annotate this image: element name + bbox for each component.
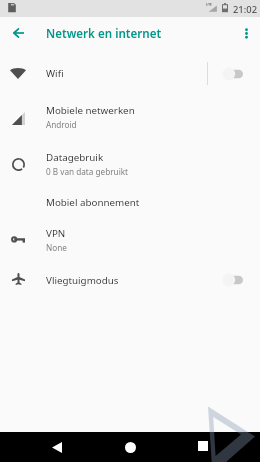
button[interactable]: Wifi [0, 55, 260, 92]
button[interactable]: Recents [188, 431, 218, 461]
button[interactable]: Mobiele netwerken [0, 94, 260, 139]
button[interactable]: Toggle Wifi [208, 55, 260, 92]
staticText: Vliegtuigmodus [46, 274, 119, 287]
button[interactable]: More options [232, 19, 260, 47]
button[interactable]: Mobiel abonnement [0, 185, 260, 219]
staticText: Mobiele netwerken [46, 104, 135, 117]
button[interactable]: Toggle Vliegtuigmodus [208, 263, 260, 297]
staticText: Mobiel abonnement [46, 196, 140, 209]
staticText: 0 B van data gebruikt [46, 166, 129, 177]
button[interactable]: Datagebruik [0, 141, 260, 186]
staticText: Android [46, 119, 77, 130]
button[interactable]: Back [42, 432, 72, 462]
staticText: 21:02 [233, 3, 258, 16]
button[interactable]: Vliegtuigmodus [0, 263, 260, 297]
staticText: Netwerk en internet [46, 26, 162, 42]
staticText: Datagebruik [46, 151, 104, 164]
staticText: VPN [46, 227, 66, 240]
staticText: None [46, 242, 67, 253]
button[interactable]: VPN [0, 217, 260, 262]
button[interactable]: Home [115, 432, 145, 462]
staticText: Wifi [46, 67, 64, 80]
button[interactable]: Back [4, 19, 32, 47]
